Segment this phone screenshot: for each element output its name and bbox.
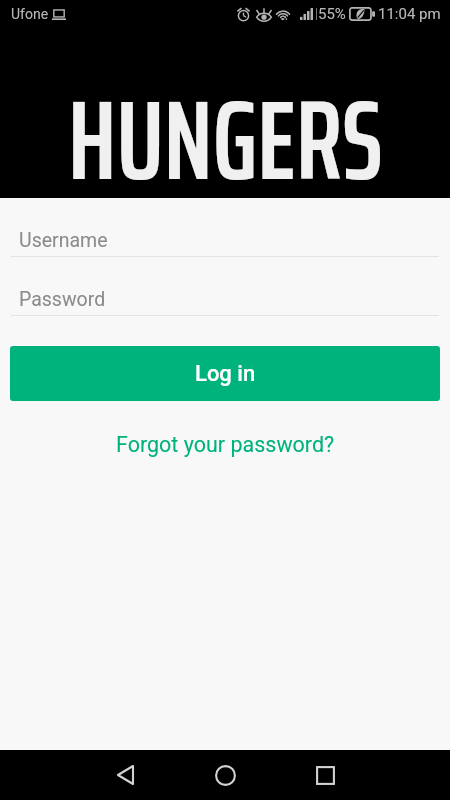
staticText: Ufone [11, 6, 49, 22]
staticText: 11:04 pm [378, 5, 441, 23]
button[interactable]: Recent apps [275, 750, 375, 800]
staticText: HUNGERS [68, 53, 383, 228]
button[interactable]: Back [75, 750, 175, 800]
staticText: Log in [195, 361, 256, 387]
button[interactable]: Username [0, 225, 450, 257]
button[interactable]: Forgot your password? [106, 428, 345, 461]
staticText: 55% [318, 5, 346, 23]
staticText: Username [19, 229, 108, 252]
button[interactable]: Home [175, 750, 275, 800]
button[interactable]: Log in [10, 346, 440, 401]
staticText: Password [19, 288, 106, 311]
button[interactable]: Password [0, 284, 450, 316]
staticText: Forgot your password? [116, 432, 335, 457]
